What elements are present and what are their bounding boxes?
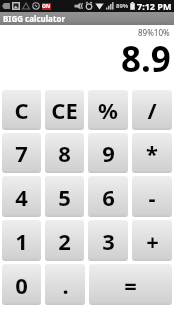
- button[interactable]: 6: [88, 176, 128, 217]
- button[interactable]: +: [132, 220, 172, 261]
- staticText: %: [98, 95, 118, 125]
- staticText: *: [146, 138, 158, 168]
- staticText: ON: [42, 3, 51, 10]
- staticText: CE: [51, 95, 78, 125]
- button[interactable]: -: [132, 176, 172, 217]
- button[interactable]: 9: [88, 133, 128, 173]
- staticText: =: [124, 270, 137, 300]
- button[interactable]: *: [132, 133, 172, 173]
- staticText: 6: [102, 182, 115, 212]
- staticText: 7: [15, 138, 28, 168]
- button[interactable]: 0: [2, 264, 41, 305]
- staticText: /: [147, 95, 157, 125]
- button[interactable]: 1: [2, 220, 41, 261]
- staticText: -: [148, 182, 156, 212]
- staticText: 3: [102, 226, 115, 256]
- staticText: 7:12 PM: [137, 0, 172, 12]
- staticText: C: [14, 95, 29, 125]
- button[interactable]: CE: [45, 90, 84, 130]
- button[interactable]: 4: [2, 176, 41, 217]
- staticText: 8.9: [121, 35, 171, 83]
- button[interactable]: 5: [45, 176, 84, 217]
- button[interactable]: %: [88, 90, 128, 130]
- staticText: 1: [15, 226, 28, 256]
- button[interactable]: =: [89, 264, 172, 305]
- button[interactable]: .: [45, 264, 85, 305]
- staticText: 5: [58, 182, 71, 212]
- button[interactable]: /: [132, 90, 172, 130]
- staticText: .: [62, 270, 69, 300]
- staticText: +: [146, 226, 159, 256]
- staticText: 4: [15, 182, 28, 212]
- staticText: 89%10%: [138, 27, 170, 38]
- staticText: 0: [15, 270, 28, 300]
- staticText: 9: [102, 138, 115, 168]
- button[interactable]: 8: [45, 133, 84, 173]
- button[interactable]: C: [2, 90, 41, 130]
- staticText: 2: [58, 226, 71, 256]
- staticText: BIGG calculator: [3, 13, 65, 24]
- staticText: 8: [58, 138, 71, 168]
- button[interactable]: 3: [88, 220, 128, 261]
- button[interactable]: 2: [45, 220, 84, 261]
- staticText: 89%: [116, 2, 129, 10]
- button[interactable]: 7: [2, 133, 41, 173]
